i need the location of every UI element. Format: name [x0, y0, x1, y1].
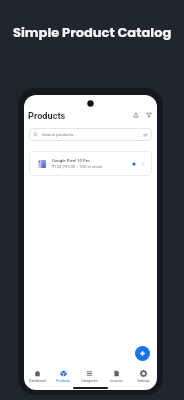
button[interactable]: Settings [130, 367, 157, 385]
button[interactable]: Products [50, 367, 76, 385]
button[interactable]: Add product [135, 346, 150, 361]
button[interactable]: Categories [76, 367, 103, 385]
staticText: Simple Product Catalog [13, 23, 172, 41]
staticText: Google Pixel 10 Pro [52, 158, 90, 163]
button[interactable]: Invoices [103, 367, 130, 385]
button[interactable]: Google Pixel 10 Pro [29, 151, 152, 176]
button[interactable]: Search products... [29, 128, 152, 141]
staticText: Dashboard [29, 379, 46, 383]
button[interactable]: Dashboard [24, 367, 50, 385]
button[interactable]: Filter [143, 109, 155, 121]
staticText: Settings [137, 379, 150, 383]
staticText: Categories [81, 379, 98, 383]
staticText: Products [56, 379, 70, 383]
staticText: Invoices [110, 379, 123, 383]
staticText: Search products... [42, 132, 77, 137]
staticText: ₹124,999.00 • 100 in stock [52, 164, 103, 169]
staticText: Products [28, 110, 66, 121]
button[interactable]: Export [130, 109, 142, 121]
